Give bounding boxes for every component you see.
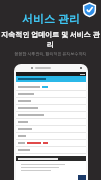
button[interactable] bbox=[16, 76, 86, 82]
button[interactable] bbox=[16, 133, 86, 140]
button[interactable] bbox=[16, 140, 86, 147]
button[interactable] bbox=[16, 156, 86, 161]
button[interactable] bbox=[16, 147, 86, 154]
staticText: 꼼꼼한 사후관리, 합리적인 유지보수까지 bbox=[14, 51, 87, 56]
button[interactable]: Security shield bbox=[82, 2, 97, 17]
button[interactable] bbox=[16, 119, 86, 126]
button[interactable] bbox=[16, 98, 86, 105]
button[interactable] bbox=[16, 126, 86, 133]
button[interactable] bbox=[16, 105, 86, 112]
button[interactable] bbox=[16, 112, 86, 119]
button[interactable]: Action button bbox=[14, 64, 88, 180]
staticText: 지속적인 업데이트 및 서비스 관리 bbox=[0, 30, 101, 49]
staticText: 서비스 관리 bbox=[22, 11, 80, 26]
button[interactable] bbox=[16, 84, 86, 91]
button[interactable] bbox=[16, 91, 86, 98]
